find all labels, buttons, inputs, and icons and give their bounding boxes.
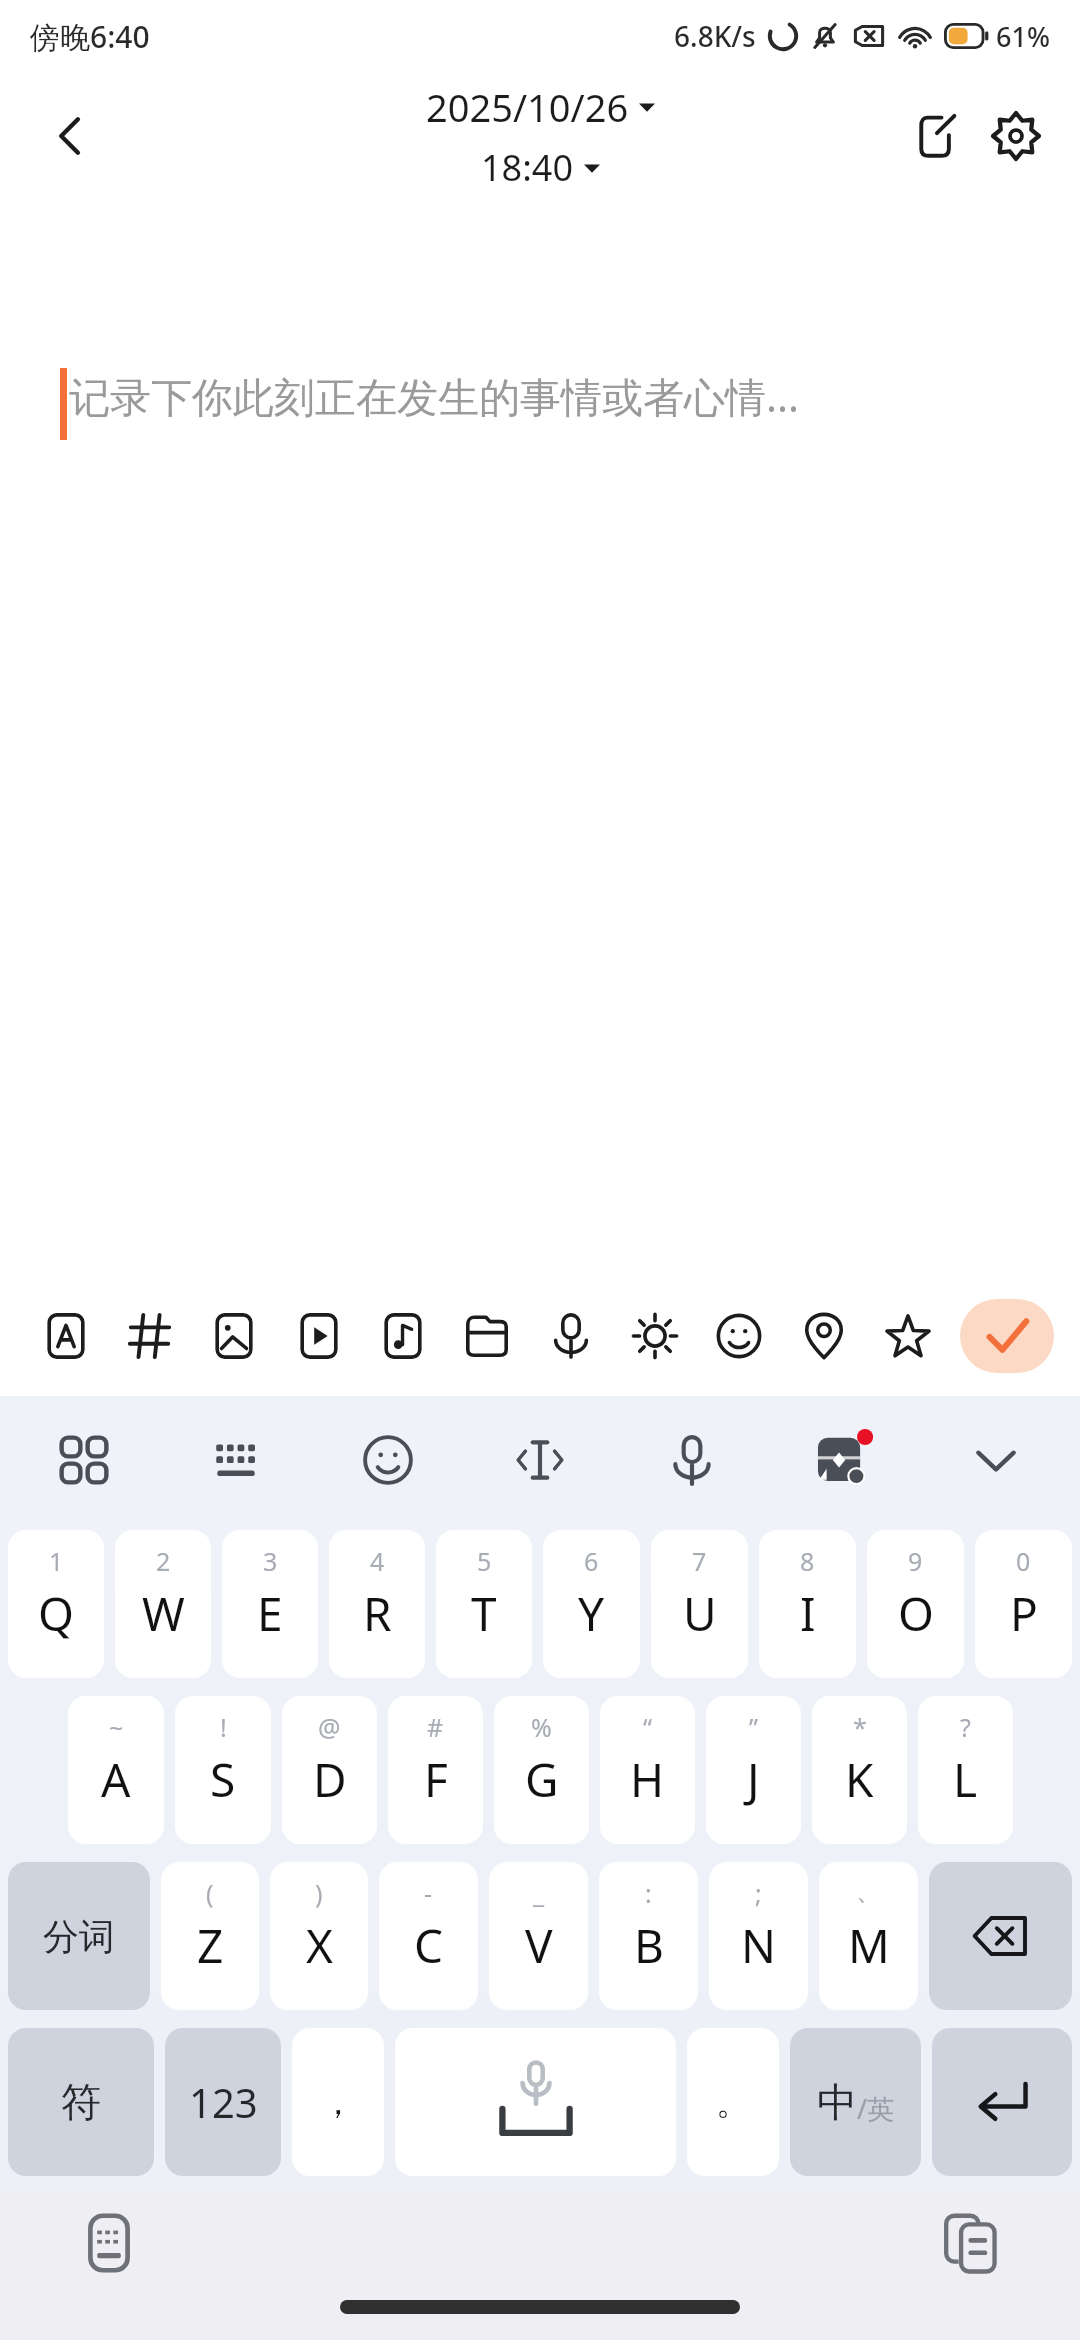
button[interactable]: Done bbox=[960, 1299, 1054, 1373]
button[interactable]: Apps bbox=[48, 1424, 120, 1496]
staticText: M bbox=[848, 1914, 890, 1977]
staticText: 61% bbox=[996, 18, 1050, 55]
staticText: 6.8K/s bbox=[674, 17, 756, 55]
button[interactable]: Weather bbox=[623, 1304, 687, 1368]
button[interactable]: 123 bbox=[165, 2028, 281, 2176]
staticText: /英 bbox=[857, 2090, 895, 2127]
staticText: ) bbox=[315, 1876, 323, 1910]
button[interactable]: 5 bbox=[436, 1530, 532, 1678]
staticText: 2 bbox=[156, 1544, 171, 1578]
button[interactable]: 3 bbox=[222, 1530, 318, 1678]
staticText: ~ bbox=[109, 1710, 124, 1744]
button[interactable]: 2 bbox=[115, 1530, 211, 1678]
staticText: Y bbox=[578, 1582, 605, 1645]
staticText: 123 bbox=[189, 2075, 258, 2129]
button[interactable]: Music bbox=[371, 1304, 435, 1368]
button[interactable]: 7 bbox=[651, 1530, 748, 1678]
button[interactable]: Text style bbox=[34, 1304, 98, 1368]
staticText: 18:40 bbox=[481, 143, 574, 192]
button[interactable]: Clipboard bbox=[928, 2200, 1014, 2286]
button[interactable]: 、 bbox=[819, 1862, 918, 2010]
staticText: # bbox=[427, 1710, 444, 1744]
button[interactable]: Enter bbox=[932, 2028, 1072, 2176]
button[interactable]: @ bbox=[282, 1696, 377, 1844]
staticText: 4 bbox=[370, 1544, 385, 1578]
button[interactable]: 符 bbox=[8, 2028, 154, 2176]
button[interactable]: ) bbox=[270, 1862, 368, 2010]
staticText: 1 bbox=[49, 1544, 64, 1578]
button[interactable]: ” bbox=[706, 1696, 801, 1844]
staticText: ! bbox=[220, 1710, 227, 1744]
button[interactable]: 8 bbox=[759, 1530, 856, 1678]
button[interactable]: Back bbox=[34, 100, 106, 172]
button[interactable]: _ bbox=[489, 1862, 588, 2010]
button[interactable]: ? bbox=[918, 1696, 1013, 1844]
staticText: 中 bbox=[817, 2077, 857, 2127]
button[interactable]: Backspace bbox=[929, 1862, 1072, 2010]
button[interactable]: 18:40 bbox=[475, 141, 606, 194]
staticText: 0 bbox=[1016, 1544, 1031, 1578]
button[interactable]: 。 bbox=[687, 2028, 779, 2176]
button[interactable]: % bbox=[494, 1696, 589, 1844]
staticText: 8 bbox=[800, 1544, 815, 1578]
button[interactable]: 0 bbox=[975, 1530, 1072, 1678]
button[interactable]: Voice input bbox=[656, 1424, 728, 1496]
button[interactable]: Theme bbox=[808, 1424, 880, 1496]
staticText: 7 bbox=[692, 1544, 707, 1578]
button[interactable]: Hide keyboard bbox=[960, 1424, 1032, 1496]
button[interactable]: “ bbox=[600, 1696, 695, 1844]
staticText: ? bbox=[960, 1710, 971, 1744]
staticText: ; bbox=[755, 1876, 762, 1910]
staticText: 5 bbox=[477, 1544, 492, 1578]
staticText: : bbox=[645, 1876, 652, 1910]
button[interactable]: ， bbox=[292, 2028, 384, 2176]
staticText: N bbox=[741, 1914, 776, 1977]
button[interactable]: Favorite bbox=[876, 1304, 940, 1368]
staticText: H bbox=[630, 1748, 665, 1811]
staticText: W bbox=[142, 1582, 185, 1645]
button[interactable]: 4 bbox=[329, 1530, 425, 1678]
staticText: R bbox=[363, 1582, 392, 1645]
staticText: % bbox=[531, 1710, 552, 1744]
button[interactable]: Folder bbox=[455, 1304, 519, 1368]
button[interactable]: Video bbox=[287, 1304, 351, 1368]
button[interactable]: 中 bbox=[790, 2028, 921, 2176]
button[interactable]: Cursor bbox=[504, 1424, 576, 1496]
button[interactable]: ( bbox=[161, 1862, 259, 2010]
button[interactable]: Keyboard layout bbox=[200, 1424, 272, 1496]
staticText: B bbox=[634, 1914, 664, 1977]
button[interactable]: Image bbox=[202, 1304, 266, 1368]
button[interactable]: Tag bbox=[118, 1304, 182, 1368]
button[interactable]: Space bbox=[395, 2028, 676, 2176]
button[interactable]: Switch keyboard bbox=[66, 2200, 152, 2286]
button[interactable]: 6 bbox=[543, 1530, 640, 1678]
button[interactable]: Emoji bbox=[352, 1424, 424, 1496]
button[interactable]: 分词 bbox=[8, 1862, 150, 2010]
staticText: T bbox=[471, 1582, 497, 1645]
button[interactable]: ! bbox=[175, 1696, 271, 1844]
button[interactable]: - bbox=[379, 1862, 478, 2010]
staticText: D bbox=[313, 1748, 347, 1811]
button[interactable]: ; bbox=[709, 1862, 808, 2010]
staticText: _ bbox=[533, 1876, 545, 1910]
staticText: 2025/10/26 bbox=[426, 81, 629, 133]
button[interactable]: 2025/10/26 bbox=[420, 79, 661, 135]
button[interactable]: ~ bbox=[68, 1696, 164, 1844]
button[interactable]: 9 bbox=[867, 1530, 964, 1678]
button[interactable]: Mood bbox=[707, 1304, 771, 1368]
button[interactable]: 记录下你此刻正在发生的事情或者心情... bbox=[0, 200, 1080, 1276]
staticText: P bbox=[1010, 1582, 1038, 1645]
button[interactable]: Record bbox=[539, 1304, 603, 1368]
staticText: 傍晚6:40 bbox=[30, 16, 150, 57]
staticText: C bbox=[414, 1914, 444, 1977]
staticText: 。 bbox=[716, 2081, 750, 2124]
button[interactable]: # bbox=[388, 1696, 483, 1844]
button[interactable]: Location bbox=[792, 1304, 856, 1368]
button[interactable]: Settings bbox=[978, 98, 1054, 174]
button[interactable]: * bbox=[812, 1696, 907, 1844]
button[interactable]: : bbox=[599, 1862, 698, 2010]
button[interactable]: 1 bbox=[8, 1530, 104, 1678]
button[interactable]: Edit bbox=[898, 98, 974, 174]
staticText: L bbox=[953, 1748, 978, 1811]
staticText: 9 bbox=[908, 1544, 923, 1578]
